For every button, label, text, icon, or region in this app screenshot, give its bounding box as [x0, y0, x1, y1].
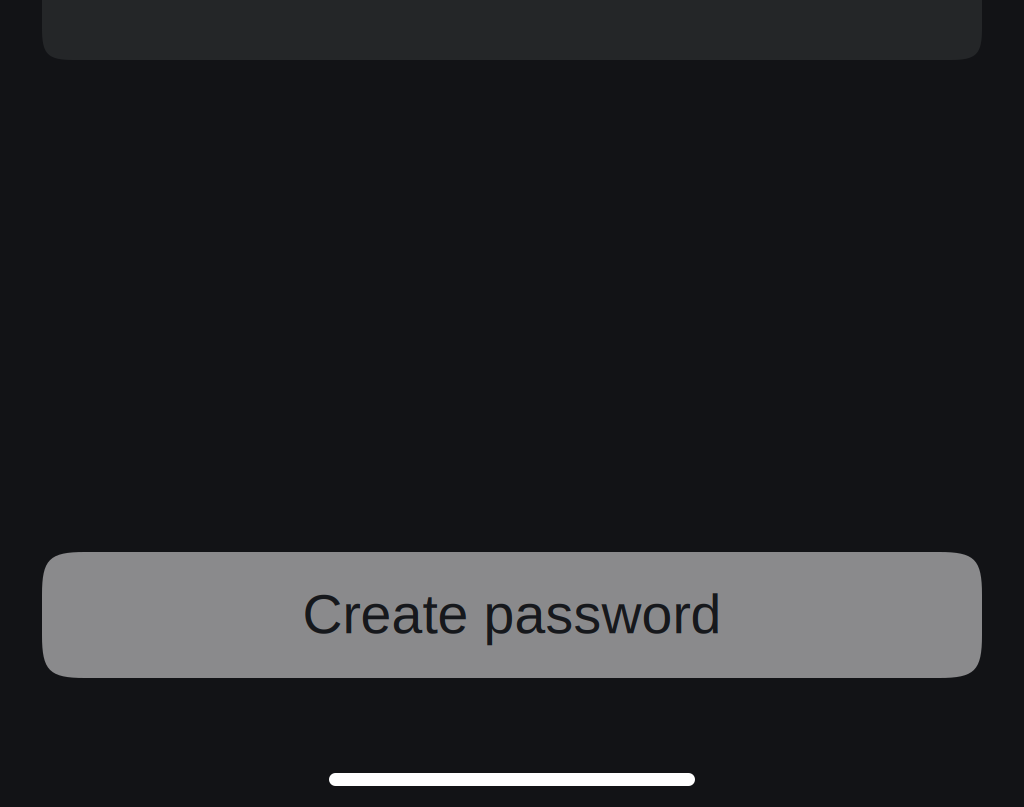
button[interactable]: Create password: [42, 552, 982, 678]
staticText: Create password: [302, 583, 721, 645]
